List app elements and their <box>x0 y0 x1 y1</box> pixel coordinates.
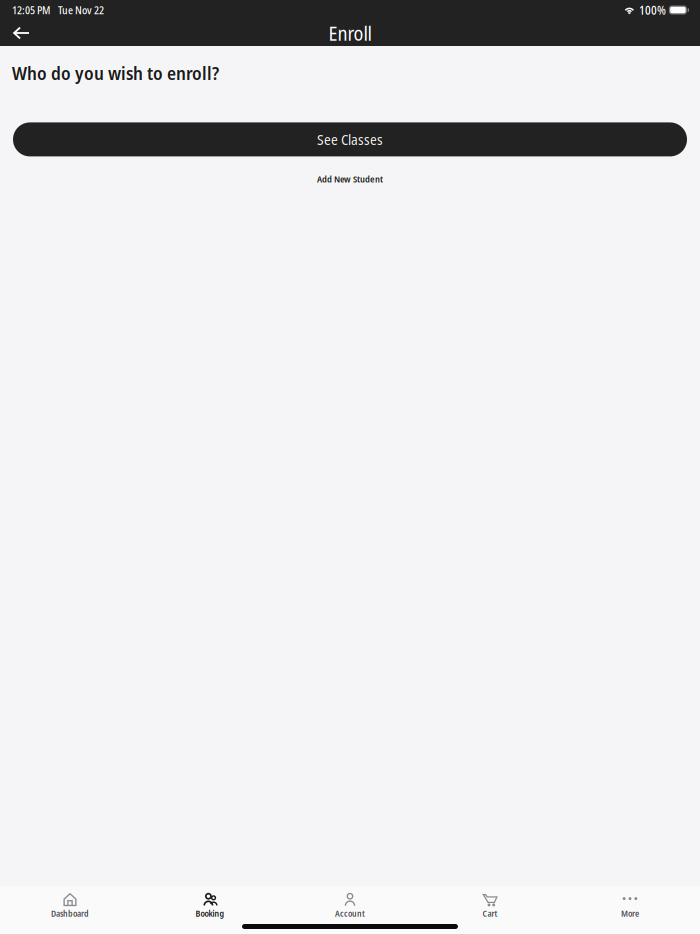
button[interactable]: Add New Student <box>299 164 401 193</box>
staticText: Dashboard <box>51 908 89 919</box>
staticText: Account <box>335 908 365 919</box>
button[interactable]: Cart <box>420 891 560 921</box>
button[interactable]: See Classes <box>13 122 687 156</box>
staticText: See Classes <box>317 129 383 149</box>
button[interactable]: Account <box>280 891 420 921</box>
staticText: Add New Student <box>317 172 383 185</box>
staticText: 100% <box>639 2 666 18</box>
staticText: More <box>621 908 639 919</box>
button[interactable]: Booking <box>140 891 280 921</box>
staticText: 12:05 PM <box>12 3 50 17</box>
button[interactable]: More <box>560 891 700 921</box>
staticText: Enroll <box>328 19 371 47</box>
staticText: Who do you wish to enroll? <box>12 60 219 85</box>
staticText: Booking <box>195 908 224 919</box>
staticText: Tue Nov 22 <box>58 3 104 17</box>
button[interactable]: Back <box>0 20 42 46</box>
staticText: Cart <box>482 908 497 919</box>
button[interactable]: Dashboard <box>0 891 140 921</box>
